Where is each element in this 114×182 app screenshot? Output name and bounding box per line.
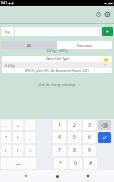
staticText: Favorites — [77, 43, 92, 48]
button[interactable]: 0 — [69, 158, 82, 169]
button[interactable]: 3 — [83, 120, 96, 130]
button[interactable]: * — [1, 132, 11, 143]
staticText: 6 — [88, 134, 91, 141]
button[interactable]: 8 — [68, 145, 81, 156]
button[interactable]: History — [94, 10, 103, 19]
button[interactable]: 2 — [68, 120, 81, 130]
staticText: = — [29, 148, 32, 153]
button[interactable]: 4 — [53, 132, 66, 143]
button[interactable]: Convert — [102, 27, 113, 36]
staticText: ( — [5, 148, 7, 153]
staticText: 7 — [58, 147, 61, 154]
staticText: 8 — [73, 147, 76, 154]
button[interactable]: Space — [1, 158, 36, 169]
button[interactable]: Recents — [83, 171, 93, 181]
staticText: 0 — [74, 160, 77, 167]
button[interactable]: ( — [1, 145, 11, 156]
button[interactable]: Back — [21, 171, 31, 181]
button[interactable]: Backspace — [98, 120, 111, 130]
staticText: ) — [17, 148, 19, 153]
staticText: . — [29, 123, 31, 128]
staticText: 0.4 kg = 400 g — [0, 49, 114, 53]
staticText: 9:41 — [1, 1, 7, 5]
button[interactable]: All — [2, 41, 57, 49]
staticText: - — [5, 123, 7, 128]
button[interactable]: 7 — [53, 145, 66, 156]
button[interactable]: 5 — [68, 132, 81, 143]
staticText: 2 — [73, 122, 76, 129]
staticText: 1 — [58, 122, 61, 129]
button[interactable]: kg — [1, 27, 14, 36]
staticText: # — [89, 160, 93, 167]
staticText: 5 — [73, 134, 76, 141]
button[interactable]: Select Unit Type — [2, 56, 112, 73]
staticText: , — [29, 135, 31, 140]
staticText: Select Unit Type — [46, 57, 69, 61]
button[interactable]: 9 — [83, 145, 96, 156]
staticText: 0.4 kg — [5, 63, 15, 68]
staticText: 9 — [88, 147, 91, 154]
button[interactable]: 1 — [53, 120, 66, 130]
button[interactable]: Favorites — [57, 41, 112, 49]
button[interactable]: ) — [13, 145, 23, 156]
button[interactable]: * — [54, 158, 67, 169]
button[interactable]: , — [25, 132, 35, 143]
button[interactable]: Home — [52, 171, 62, 181]
button[interactable]: Favorite — [103, 57, 109, 63]
button[interactable]: / — [13, 132, 23, 143]
staticText: 4 — [58, 134, 61, 141]
staticText: WFC/10 gram, KFC: 4th Assessment Report,… — [25, 69, 89, 73]
staticText: All — [27, 43, 32, 48]
staticText: * — [59, 160, 62, 167]
button[interactable]: = — [25, 145, 35, 156]
button[interactable]: - — [1, 120, 11, 130]
staticText: 3 — [88, 122, 91, 129]
button[interactable]: Settings — [103, 10, 112, 19]
button[interactable]: Enter — [98, 132, 111, 143]
staticText: kg — [5, 29, 10, 34]
staticText: * — [5, 135, 8, 140]
button[interactable]: + — [13, 120, 23, 130]
staticText: + — [17, 123, 20, 128]
button[interactable]: 6 — [83, 132, 96, 143]
button[interactable]: # — [84, 158, 97, 169]
staticText: / — [17, 135, 19, 140]
staticText: Click for change calculator — [0, 83, 114, 87]
